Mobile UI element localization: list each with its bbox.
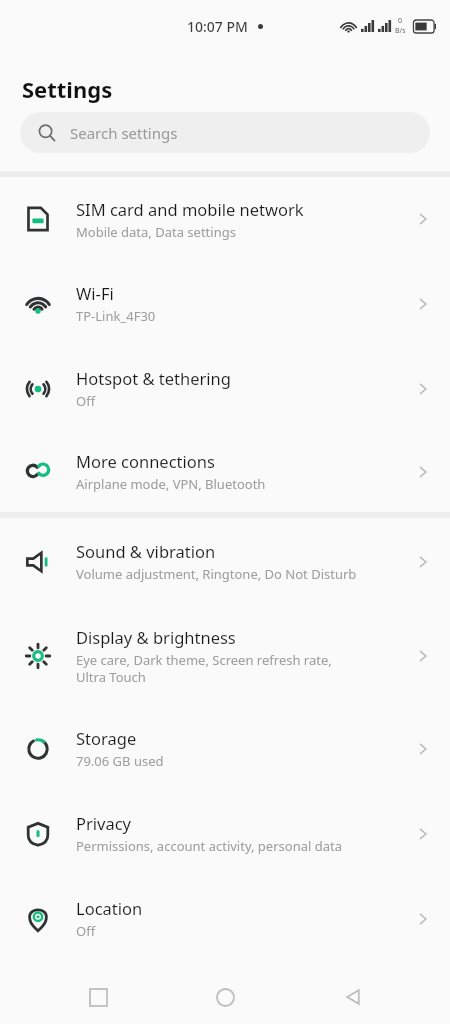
other: Open More connections bbox=[414, 463, 432, 481]
staticText: 79.06 GB used bbox=[76, 752, 164, 770]
other: Open SIM card and mobile network bbox=[414, 210, 432, 228]
staticText: Airplane mode, VPN, Bluetooth bbox=[76, 475, 266, 493]
staticText: Wi-Fi bbox=[76, 282, 114, 304]
button[interactable]: Recent apps bbox=[68, 970, 128, 1024]
staticText: Sound & vibration bbox=[76, 540, 216, 562]
staticText: B/s bbox=[395, 26, 406, 36]
button[interactable]: Sound & vibration bbox=[0, 518, 450, 605]
other: Open Location bbox=[414, 910, 432, 928]
staticText: Search settings bbox=[70, 123, 178, 143]
staticText: TP-Link_4F30 bbox=[76, 307, 156, 325]
staticText: Hotspot & tethering bbox=[76, 367, 231, 389]
staticText: Off bbox=[76, 392, 96, 410]
staticText: Settings bbox=[22, 74, 113, 104]
other: Open Privacy bbox=[414, 825, 432, 843]
staticText: Permissions, account activity, personal … bbox=[76, 837, 342, 855]
button[interactable]: Location bbox=[0, 876, 450, 961]
staticText: Eye care, Dark theme, Screen refresh rat… bbox=[76, 651, 332, 686]
button[interactable]: Storage bbox=[0, 706, 450, 791]
staticText: 0 bbox=[398, 16, 403, 26]
button[interactable]: Hotspot & tethering bbox=[0, 346, 450, 431]
staticText: Volume adjustment, Ringtone, Do Not Dist… bbox=[76, 565, 357, 583]
button[interactable]: Home bbox=[195, 970, 255, 1024]
button[interactable]: Wi-Fi bbox=[0, 261, 450, 346]
staticText: More connections bbox=[76, 450, 215, 472]
button[interactable]: Privacy bbox=[0, 791, 450, 876]
other: Open Display & brightness bbox=[414, 647, 432, 665]
staticText: Off bbox=[76, 922, 96, 940]
staticText: Storage bbox=[76, 727, 137, 749]
staticText: SIM card and mobile network bbox=[76, 198, 304, 220]
button[interactable]: More connections bbox=[0, 431, 450, 512]
other: Open Sound & vibration bbox=[414, 553, 432, 571]
staticText: Location bbox=[76, 897, 143, 919]
other: Open Storage bbox=[414, 740, 432, 758]
button[interactable]: Display & brightness bbox=[0, 605, 450, 706]
button[interactable]: SIM card and mobile network bbox=[0, 177, 450, 261]
staticText: Mobile data, Data settings bbox=[76, 223, 236, 241]
button[interactable]: Back bbox=[323, 970, 383, 1024]
staticText: Privacy bbox=[76, 812, 132, 834]
other: Open Wi-Fi bbox=[414, 295, 432, 313]
other: Open Hotspot & tethering bbox=[414, 380, 432, 398]
button[interactable]: Search settings bbox=[20, 112, 430, 153]
staticText: Display & brightness bbox=[76, 626, 236, 648]
staticText: 10:07 PM bbox=[187, 17, 248, 36]
